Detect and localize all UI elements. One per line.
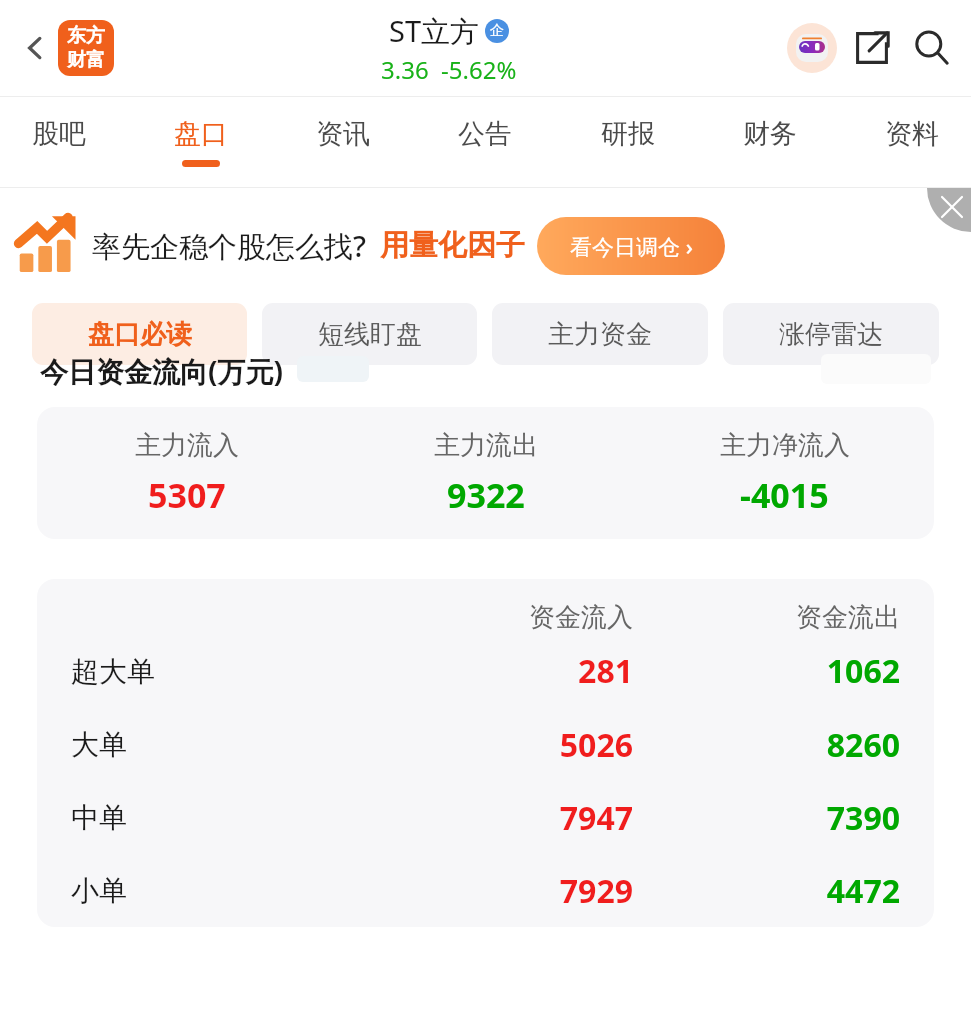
staticText: ST立方 [389, 11, 480, 51]
button[interactable]: 主力流入 [37, 407, 934, 539]
staticText: 5026 [366, 723, 633, 767]
staticText: 5307 [148, 472, 226, 518]
button[interactable]: 盘口 [168, 117, 234, 167]
staticText: 盘口必读 [88, 318, 192, 351]
staticText: 中单 [71, 800, 366, 835]
staticText: 7947 [366, 796, 633, 840]
staticText: 看今日调仓 › [570, 231, 693, 261]
staticText: 主力流入 [135, 429, 239, 462]
staticText: 东方 [67, 24, 105, 48]
button[interactable]: 资讯 [310, 117, 376, 167]
staticText: 率先企稳个股怎么找? [92, 226, 366, 266]
button[interactable]: 短线盯盘 [262, 303, 477, 365]
staticText: 研报 [601, 117, 655, 151]
button[interactable]: 研报 [595, 117, 661, 167]
staticText: 主力流出 [434, 429, 538, 462]
button[interactable]: East Money logo [58, 20, 114, 76]
staticText: -4015 [740, 472, 829, 518]
staticText: 9322 [447, 472, 525, 518]
staticText: 超大单 [71, 654, 366, 689]
staticText: 盘口 [174, 117, 228, 151]
staticText: 资讯 [316, 117, 370, 151]
staticText: 今日资金流向(万元) [40, 352, 283, 386]
staticText: 小单 [71, 873, 366, 908]
staticText: 7390 [633, 796, 900, 840]
staticText: 财务 [743, 117, 797, 151]
button[interactable]: 盘口必读 [32, 303, 247, 365]
button[interactable]: 财务 [737, 117, 803, 167]
button[interactable]: Close ad [927, 188, 971, 232]
staticText: 主力净流入 [720, 429, 850, 462]
button[interactable]: 率先企稳个股怎么找? [16, 188, 959, 303]
staticText: 281 [366, 649, 633, 693]
staticText: 公告 [458, 117, 512, 151]
staticText: 资金流入 [366, 601, 633, 634]
staticText: 4472 [633, 869, 900, 913]
staticText: 大单 [71, 727, 366, 762]
button[interactable]: ST立方 [381, 11, 517, 86]
button[interactable]: 涨停雷达 [723, 303, 939, 365]
staticText: 8260 [633, 723, 900, 767]
button[interactable]: 中单 [71, 781, 900, 854]
staticText: 主力资金 [548, 318, 652, 351]
button[interactable]: AI assistant [785, 21, 839, 75]
staticText: 3.36 -5.62% [381, 53, 517, 86]
button[interactable]: Back [14, 27, 56, 69]
button[interactable]: 超大单 [71, 634, 900, 708]
staticText: 7929 [366, 869, 633, 913]
staticText: 财富 [67, 48, 105, 72]
staticText: 资料 [885, 117, 939, 151]
staticText: 股吧 [32, 117, 86, 151]
staticText: 1062 [633, 649, 900, 693]
staticText: 资金流出 [633, 601, 900, 634]
button[interactable]: Search [907, 23, 957, 73]
button[interactable]: 小单 [71, 854, 900, 927]
button[interactable]: 股吧 [26, 117, 92, 167]
staticText: 企 [490, 22, 504, 40]
staticText: 短线盯盘 [318, 318, 422, 351]
staticText: 用量化因子 [380, 227, 525, 264]
staticText: 涨停雷达 [779, 318, 883, 351]
button[interactable]: 大单 [71, 708, 900, 781]
button[interactable]: 主力资金 [492, 303, 708, 365]
button[interactable]: 资料 [879, 117, 945, 167]
button[interactable]: 公告 [452, 117, 518, 167]
button[interactable]: Share [847, 23, 897, 73]
button[interactable]: 看今日调仓 › [537, 217, 725, 275]
